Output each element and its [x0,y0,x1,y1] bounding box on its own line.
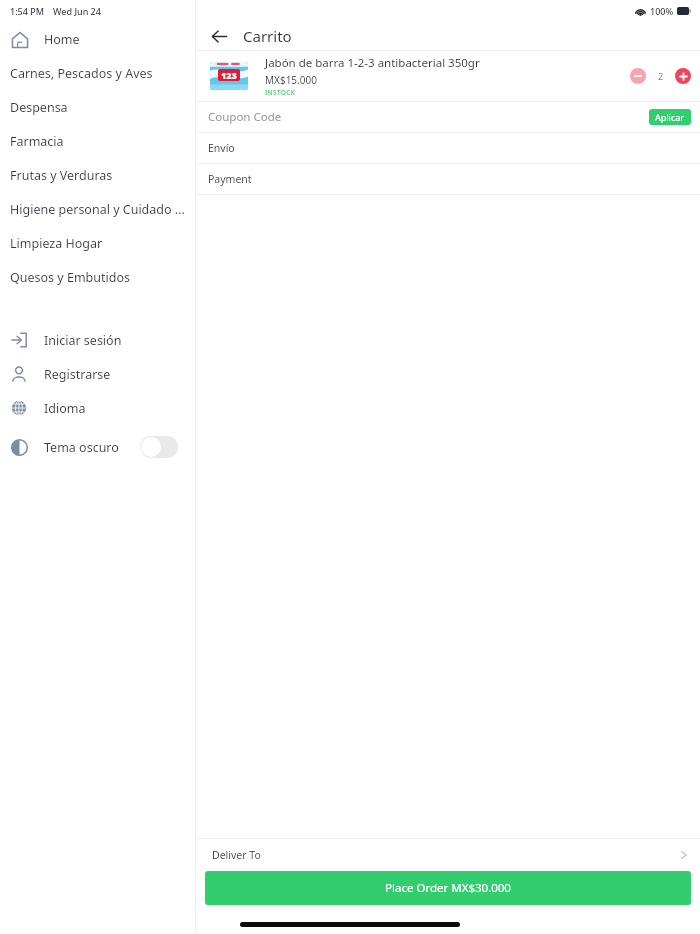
button[interactable]: Decrease quantity [630,68,646,84]
staticText: Frutas y Verduras [10,167,113,184]
staticText: Quesos y Embutidos [10,269,130,286]
staticText: Aplicar [655,111,685,123]
staticText: Jabón de barra 1-2-3 antibacterial 350gr [265,55,480,71]
staticText: 2 [658,70,664,82]
button[interactable]: Carnes, Pescados y Aves [0,56,196,90]
staticText: 100% [650,5,674,17]
staticText: Farmacia [10,133,64,150]
button[interactable]: Place Order MX$30.000 [205,871,691,905]
staticText: Carnes, Pescados y Aves [10,65,153,82]
staticText: Registrarse [44,366,111,383]
button[interactable]: Quesos y Embutidos [0,260,196,294]
staticText: Carrito [243,26,292,46]
button[interactable]: Aplicar [649,109,691,125]
staticText: Coupon Code [208,109,649,125]
button[interactable]: Increase quantity [675,68,691,84]
staticText: Deliver To [212,848,678,862]
button[interactable]: Iniciar sesión [0,323,196,357]
staticText: Tema oscuro [44,439,119,456]
staticText: Wed Jun 24 [53,5,101,17]
staticText: Home [44,31,80,48]
staticText: Envío [208,141,235,155]
button[interactable]: Farmacia [0,124,196,158]
button[interactable]: Frutas y Verduras [0,158,196,192]
staticText: Place Order MX$30.000 [385,880,511,896]
staticText: 1:54 PM [10,5,44,17]
staticText: Iniciar sesión [44,332,122,349]
button[interactable]: Payment [196,164,700,194]
button[interactable]: Deliver To [196,839,700,871]
staticText: 123 [221,69,237,81]
button[interactable]: Envío [196,133,700,163]
button[interactable]: Idioma [0,391,196,425]
button[interactable]: Registrarse [0,357,196,391]
staticText: INSTOCK [265,88,296,97]
staticText: Payment [208,172,252,186]
button[interactable]: Limpieza Hogar [0,226,196,260]
button[interactable]: Home [0,22,196,56]
staticText: Higiene personal y Cuidado ... [10,201,185,218]
button[interactable]: Tema oscuro [0,425,196,469]
staticText: Despensa [10,99,68,116]
staticText: Limpieza Hogar [10,235,103,252]
staticText: MX$15.000 [265,73,317,87]
button[interactable]: Higiene personal y Cuidado ... [0,192,196,226]
button[interactable]: 123 [196,51,700,101]
button[interactable]: Despensa [0,90,196,124]
button[interactable]: Back [204,22,234,50]
staticText: Idioma [44,400,86,417]
